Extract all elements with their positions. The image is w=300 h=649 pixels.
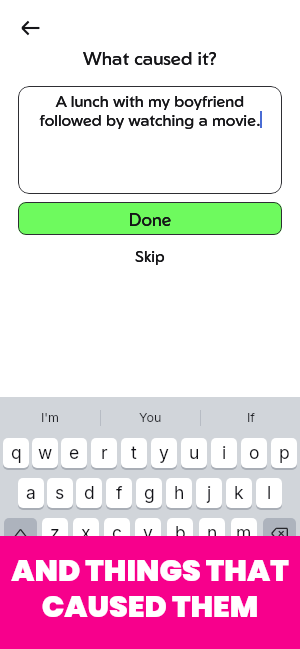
staticText: What caused it?	[0, 46, 300, 69]
button[interactable]: A lunch with my boyfriend followed by wa…	[18, 86, 282, 194]
button[interactable]: y	[151, 438, 177, 468]
staticText: y	[159, 442, 169, 463]
staticText: Done	[18, 208, 282, 230]
button[interactable]: Shift	[4, 518, 37, 548]
button[interactable]: i	[211, 438, 237, 468]
staticText: q	[11, 442, 22, 463]
button[interactable]: t	[121, 438, 147, 468]
staticText: t	[131, 442, 137, 463]
button[interactable]: Backspace	[263, 518, 296, 548]
staticText: w	[38, 442, 53, 463]
staticText: u	[189, 442, 200, 463]
button[interactable]: e	[61, 438, 87, 468]
button[interactable]: Skip	[119, 244, 181, 267]
button[interactable]: d	[76, 478, 102, 508]
button[interactable]: You	[101, 397, 200, 438]
button[interactable]: k	[226, 478, 252, 508]
button[interactable]: Back	[12, 10, 48, 46]
button[interactable]: h	[166, 478, 192, 508]
staticText: Skip	[135, 246, 165, 265]
staticText: n	[207, 522, 218, 543]
button[interactable]: q	[3, 438, 29, 468]
staticText: What caused it?	[0, 46, 300, 69]
staticText: A lunch with my boyfriend followed by wa…	[18, 91, 282, 130]
staticText: c	[112, 522, 122, 543]
button[interactable]: b	[167, 518, 193, 548]
staticText: l	[267, 482, 272, 503]
button[interactable]: o	[241, 438, 267, 468]
staticText: j	[207, 482, 212, 503]
staticText: Skip	[135, 246, 165, 265]
button[interactable]: c	[104, 518, 130, 548]
button[interactable]: r	[91, 438, 117, 468]
button[interactable]: u	[181, 438, 207, 468]
button[interactable]: s	[47, 478, 73, 508]
button[interactable]: j	[196, 478, 222, 508]
button[interactable]: x	[73, 518, 99, 548]
button[interactable]: n	[199, 518, 225, 548]
staticText: o	[249, 442, 260, 463]
staticText: e	[69, 442, 80, 463]
button[interactable]: w	[32, 438, 58, 468]
button[interactable]: a	[18, 478, 44, 508]
staticText: i	[222, 442, 227, 463]
staticText: Done	[18, 208, 282, 230]
staticText: m	[236, 522, 252, 543]
button[interactable]: l	[256, 478, 282, 508]
staticText: h	[174, 482, 185, 503]
staticText: x	[81, 522, 91, 543]
button[interactable]: If	[201, 397, 300, 438]
button[interactable]: I'm	[0, 397, 100, 438]
staticText: You	[139, 410, 162, 425]
staticText: g	[144, 482, 155, 503]
button[interactable]: m	[231, 518, 257, 548]
button[interactable]: f	[106, 478, 132, 508]
button[interactable]: v	[135, 518, 161, 548]
staticText: d	[84, 482, 95, 503]
button[interactable]: Done	[18, 202, 282, 235]
staticText: p	[279, 442, 290, 463]
staticText: z	[50, 522, 60, 543]
staticText: What caused it?	[0, 46, 300, 69]
staticText: b	[175, 522, 186, 543]
staticText: k	[234, 482, 244, 503]
staticText: A lunch with my boyfriend followed by wa…	[18, 91, 282, 130]
staticText: r	[101, 442, 108, 463]
staticText: s	[55, 482, 65, 503]
staticText: f	[116, 482, 123, 503]
staticText: v	[143, 522, 153, 543]
staticText: A lunch with my boyfriend followed by wa…	[18, 91, 282, 130]
staticText: Skip	[135, 246, 165, 265]
button[interactable]: p	[271, 438, 297, 468]
staticText: a	[26, 482, 36, 503]
staticText: If	[247, 410, 255, 425]
staticText: AND THINGS THAT CAUSED THEM	[11, 550, 289, 628]
button[interactable]: g	[136, 478, 162, 508]
button[interactable]: z	[42, 518, 68, 548]
staticText: Done	[18, 208, 282, 230]
staticText: I'm	[41, 410, 60, 425]
